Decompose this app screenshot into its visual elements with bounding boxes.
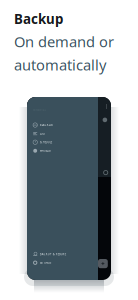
staticText: Backup bbox=[14, 10, 63, 28]
button[interactable]: SETTINGS bbox=[33, 258, 96, 267]
staticText: automatically bbox=[14, 55, 106, 75]
staticText: SCHEDULE bbox=[40, 140, 52, 144]
staticText: SETTINGS bbox=[40, 261, 51, 264]
button[interactable]: WHITELIST bbox=[33, 146, 96, 155]
button[interactable]: BACKUP & RESTORE bbox=[33, 250, 96, 258]
staticText: WHITELIST bbox=[40, 149, 51, 152]
staticText: BLACKLIST bbox=[40, 123, 53, 127]
button[interactable]: SCHEDULE bbox=[33, 138, 96, 146]
staticText: BACKUP & RESTORE bbox=[40, 252, 66, 256]
button[interactable]: BLACKLIST bbox=[33, 121, 96, 129]
staticText: LOG bbox=[40, 132, 45, 135]
staticText: On demand or bbox=[14, 32, 114, 51]
button[interactable]: LOG bbox=[33, 129, 96, 138]
